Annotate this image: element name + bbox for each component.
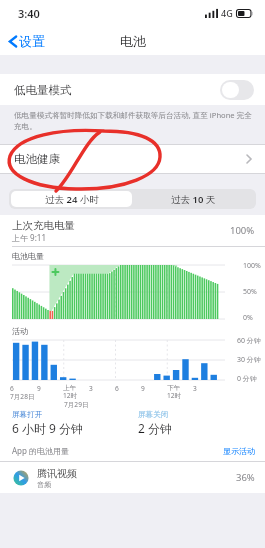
button[interactable]: 过去 24 小时	[11, 191, 132, 207]
staticText: 7月29日	[64, 400, 89, 409]
staticText: 3	[89, 384, 93, 393]
staticText: 6 小时 9 分钟	[12, 420, 84, 436]
button[interactable]: 设置	[0, 28, 53, 54]
staticText: 0%	[243, 313, 253, 323]
staticText: 电池	[120, 33, 146, 49]
staticText: 下午 12时	[167, 384, 182, 400]
staticText: 设置	[19, 33, 45, 49]
staticText: 活动	[12, 326, 28, 336]
staticText: 60 分钟	[237, 336, 261, 346]
staticText: 4G	[221, 7, 233, 19]
button[interactable]: 过去 10 天	[132, 191, 254, 207]
staticText: 50%	[243, 287, 257, 297]
staticText: 屏幕打开	[12, 410, 43, 420]
button[interactable]: 低电量模式开关	[220, 80, 254, 100]
staticText: 3:40	[18, 6, 40, 21]
staticText: 100%	[230, 224, 255, 237]
staticText: 电池电量	[12, 251, 44, 261]
staticText: 上午 12时	[63, 384, 78, 400]
staticText: 9	[37, 384, 41, 393]
staticText: 电池健康	[14, 152, 60, 166]
staticText: 低电量模式将暂时降低如下载和邮件获取等后台活动, 直至 iPhone 完全充电。	[14, 110, 254, 131]
staticText: App 的电池用量	[12, 445, 70, 456]
button[interactable]: 腾讯视频	[0, 462, 265, 493]
staticText: 3	[193, 384, 197, 393]
staticText: 0 分钟	[237, 374, 257, 384]
staticText: 6	[115, 384, 119, 393]
staticText: 100%	[243, 261, 261, 271]
staticText: 6	[10, 384, 14, 393]
staticText: 低电量模式	[14, 83, 72, 97]
staticText: 过去 24 小时	[45, 193, 99, 206]
staticText: 7月28日	[10, 392, 35, 401]
staticText: 上次充电电量	[12, 219, 75, 232]
staticText: 36%	[236, 471, 255, 484]
staticText: 30 分钟	[237, 355, 261, 365]
staticText: 过去 10 天	[171, 193, 216, 206]
staticText: 音频	[37, 480, 51, 489]
staticText: 2 分钟	[138, 420, 172, 436]
staticText: 屏幕关闭	[138, 410, 169, 420]
staticText: 9	[141, 384, 145, 393]
button[interactable]: 低电量模式	[0, 74, 265, 105]
button[interactable]: 显示活动	[223, 446, 255, 456]
staticText: 腾讯视频	[37, 467, 77, 480]
button[interactable]: 电池健康	[0, 145, 265, 173]
staticText: 上午 9:11	[12, 232, 46, 243]
